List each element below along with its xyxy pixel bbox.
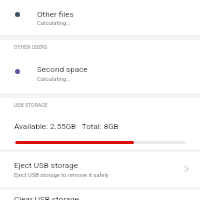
staticText: Available: 2.55GB Total: 8GB xyxy=(14,122,119,131)
staticText: Other files xyxy=(37,9,74,18)
button[interactable]: Other files xyxy=(0,3,200,33)
staticText: USB STORAGE xyxy=(14,102,48,108)
button[interactable]: Clear USB storage xyxy=(0,189,200,200)
staticText: Eject USB storage to remove it safely xyxy=(14,172,109,179)
staticText: OTHER USERS xyxy=(14,44,48,50)
staticText: Calculating… xyxy=(37,20,71,27)
staticText: Calculating… xyxy=(37,76,71,83)
other: Open xyxy=(181,163,193,175)
button[interactable]: Eject USB storage xyxy=(0,155,200,189)
button[interactable]: Second space xyxy=(0,57,200,87)
staticText: Clear USB storage xyxy=(14,194,79,200)
staticText: Second space xyxy=(37,64,88,73)
staticText: Eject USB storage xyxy=(14,160,79,169)
